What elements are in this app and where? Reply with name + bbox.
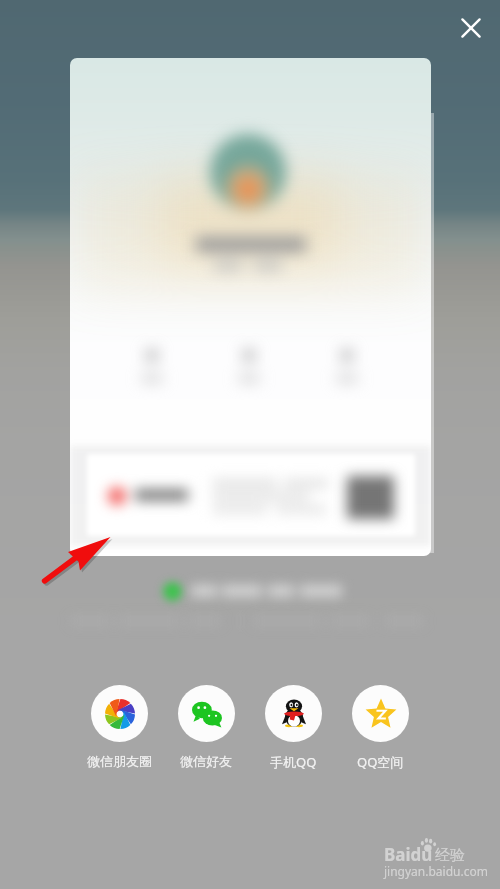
button[interactable]: QQ空间: [336, 685, 424, 771]
button[interactable]: 微信朋友圈: [75, 685, 163, 769]
button[interactable]: 手机QQ: [249, 685, 337, 771]
staticText: Baidu: [384, 843, 433, 866]
staticText: QQ空间: [357, 753, 404, 771]
button[interactable]: 微信好友: [162, 685, 250, 769]
button[interactable]: [70, 58, 431, 556]
staticText: 经验: [435, 846, 465, 865]
staticText: 微信好友: [180, 753, 232, 769]
staticText: 手机QQ: [270, 753, 317, 771]
staticText: 微信朋友圈: [87, 753, 152, 769]
button[interactable]: Close: [451, 8, 491, 48]
staticText: jingyan.baidu.com: [384, 863, 488, 879]
